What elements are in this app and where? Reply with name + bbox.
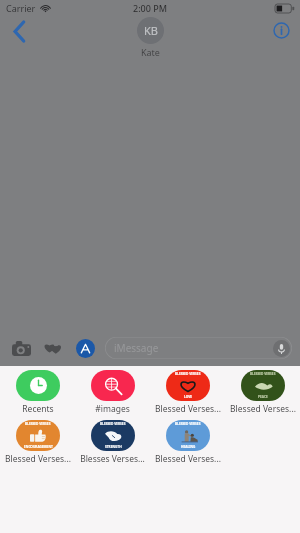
staticText: BLESSED VERSES	[100, 422, 126, 426]
staticText: ENCOURAGEMENT	[24, 445, 53, 449]
staticText: #images	[95, 403, 130, 415]
staticText: Blessed Verses...	[155, 403, 221, 415]
staticText: Recents	[22, 403, 54, 415]
staticText: Kate	[141, 46, 160, 58]
staticText: HEALING	[181, 445, 196, 449]
button[interactable]: Details	[267, 16, 295, 44]
button[interactable]: BLESSED VERSES	[225, 370, 300, 415]
staticText: LOVE	[184, 395, 193, 399]
button[interactable]: iMessage	[105, 337, 292, 359]
button[interactable]: #images	[75, 370, 150, 415]
staticText: iMessage	[114, 341, 159, 355]
button[interactable]: Record audio	[273, 340, 290, 357]
button[interactable]: BLESSED VERSES	[150, 370, 225, 415]
button[interactable]: BLESSED VERSES	[75, 420, 150, 465]
button[interactable]: Recents	[0, 370, 75, 415]
staticText: KB	[144, 23, 158, 38]
button[interactable]: KB	[137, 17, 164, 58]
button[interactable]: Camera	[8, 335, 34, 361]
button[interactable]: BLESSED VERSES	[150, 420, 225, 465]
staticText: BLESSED VERSES	[175, 372, 201, 376]
staticText: Blesses Verses...	[80, 453, 145, 465]
staticText: Blessed Verses...	[230, 403, 296, 415]
button[interactable]: BLESSED VERSES	[0, 420, 75, 465]
staticText: 2:00 PM	[133, 2, 167, 14]
staticText: Blessed Verses...	[5, 453, 71, 465]
staticText: PEACE	[258, 395, 268, 399]
button[interactable]: Digital Touch	[40, 335, 66, 361]
staticText: Carrier	[6, 2, 36, 14]
button[interactable]: Back	[4, 16, 34, 46]
staticText: BLESSED VERSES	[250, 372, 276, 376]
staticText: STRENGTH	[105, 445, 122, 449]
staticText: BLESSED VERSES	[175, 422, 201, 426]
staticText: BLESSED VERSES	[25, 422, 51, 426]
staticText: Blessed Verses...	[155, 453, 221, 465]
button[interactable]: App Store	[72, 335, 98, 361]
